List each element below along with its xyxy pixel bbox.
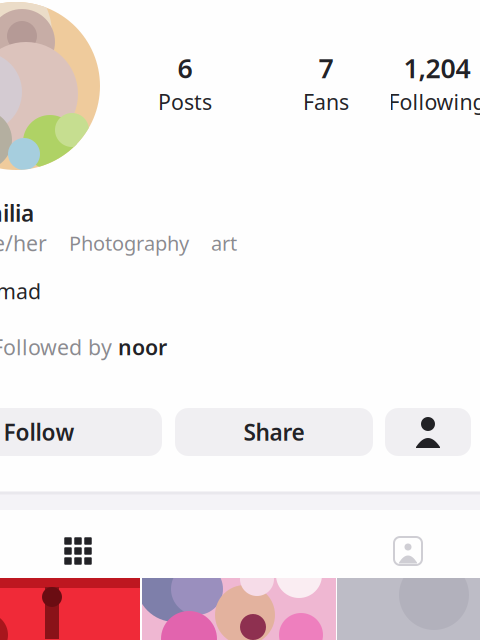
staticText: Posts (158, 87, 212, 116)
staticText: nomad (0, 277, 41, 305)
staticText: art (211, 230, 237, 256)
button[interactable]: 7 (266, 50, 386, 116)
staticText: 7 (318, 50, 333, 85)
staticText: 1,204 (403, 50, 470, 85)
button[interactable]: 1,204 (377, 50, 480, 116)
staticText: she/her (0, 229, 47, 257)
button[interactable]: Follow (0, 408, 162, 456)
staticText: noor (118, 333, 167, 361)
staticText: Photography (69, 230, 189, 256)
staticText: Fans (303, 87, 349, 116)
button[interactable]: Posts (0, 526, 160, 576)
button[interactable]: 6 (132, 50, 238, 116)
staticText: Share (243, 417, 304, 447)
staticText: Followed by (0, 333, 112, 361)
staticText: Following (388, 87, 480, 116)
button[interactable]: Share (175, 408, 373, 456)
button[interactable]: Discover people (385, 408, 471, 456)
staticText: Follow (3, 417, 74, 447)
button[interactable]: Followed by (0, 333, 192, 361)
staticText: emilia (0, 198, 34, 228)
staticText: 6 (177, 50, 192, 85)
button[interactable]: Tagged (325, 526, 480, 576)
